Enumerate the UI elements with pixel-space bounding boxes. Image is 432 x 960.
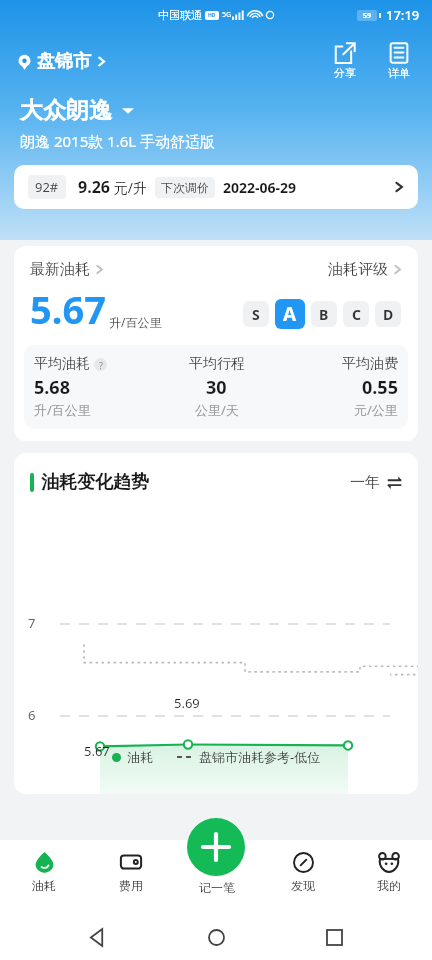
staticText: D	[383, 305, 394, 324]
button[interactable]: 最新油耗	[30, 260, 104, 279]
staticText: 5.67	[84, 742, 110, 760]
staticText: 盘锦市	[37, 50, 91, 73]
staticText: 油耗	[127, 749, 153, 765]
staticText: 平均油耗	[34, 355, 90, 373]
staticText: 升/百公里	[34, 401, 91, 419]
staticText: 下次调价	[161, 180, 209, 195]
staticText: 6	[28, 706, 36, 724]
staticText: 9.26	[78, 176, 110, 198]
staticText: A	[283, 301, 297, 327]
staticText: 油耗变化趋势	[41, 471, 149, 494]
button[interactable]: 分享	[330, 40, 360, 82]
button[interactable]: D	[375, 301, 401, 327]
button[interactable]: 油耗	[0, 850, 87, 893]
staticText: 17:19	[386, 6, 420, 24]
staticText: 7	[28, 614, 36, 632]
staticText: 元/升	[110, 178, 147, 197]
button[interactable]: Home	[196, 917, 236, 957]
staticText: 费用	[119, 878, 143, 893]
staticText: 大众朗逸	[20, 96, 112, 125]
staticText: 5.67	[30, 283, 106, 335]
button[interactable]: 油耗评级	[328, 260, 402, 279]
staticText: 中国联通	[158, 8, 202, 22]
button[interactable]: 发现	[260, 850, 346, 893]
button[interactable]: 大众朗逸	[20, 96, 134, 125]
staticText: 发现	[291, 878, 315, 893]
staticText: 详单	[388, 66, 410, 80]
button[interactable]: C	[343, 301, 369, 327]
button[interactable]: S	[243, 301, 269, 327]
button[interactable]: Back	[78, 917, 118, 957]
staticText: 升/百公里	[109, 314, 162, 330]
button[interactable]: 一年	[350, 473, 402, 492]
staticText: 我的	[377, 878, 401, 893]
staticText: 30	[206, 375, 227, 400]
staticText: 2022-06-29	[223, 178, 297, 197]
staticText: 公里/天	[195, 401, 239, 419]
staticText: 最新油耗	[30, 260, 90, 279]
staticText: 平均行程	[189, 355, 245, 373]
staticText: 记一笔	[199, 880, 235, 895]
staticText: B	[319, 305, 329, 324]
staticText: 5G	[222, 10, 232, 20]
staticText: 59	[363, 11, 372, 21]
button[interactable]: 我的	[346, 850, 432, 893]
staticText: 5.68	[34, 375, 70, 400]
button[interactable]: Recents	[314, 917, 354, 957]
button[interactable]: 记一笔	[187, 818, 245, 876]
staticText: ?	[99, 359, 103, 371]
button[interactable]: B	[311, 301, 337, 327]
staticText: 92#	[35, 178, 59, 196]
staticText: 盘锦市油耗参考-低位	[199, 748, 321, 766]
staticText: HD	[208, 12, 216, 19]
staticText: 5.69	[174, 694, 200, 712]
button[interactable]: ?	[94, 358, 107, 371]
staticText: 油耗评级	[328, 260, 388, 279]
button[interactable]: 盘锦市	[18, 46, 106, 77]
staticText: 元/公里	[354, 401, 398, 419]
staticText: 朗逸 2015款 1.6L 手动舒适版	[20, 131, 216, 151]
staticText: 一年	[350, 473, 380, 492]
staticText: S	[252, 305, 260, 324]
button[interactable]: 92#	[14, 165, 418, 209]
button[interactable]: 详单	[384, 40, 414, 82]
staticText: 油耗	[32, 878, 56, 893]
staticText: 0.55	[362, 375, 398, 400]
staticText: 平均油费	[342, 355, 398, 373]
button[interactable]: A	[275, 299, 305, 329]
button[interactable]: 记一笔	[174, 850, 260, 895]
staticText: C	[352, 305, 361, 324]
button[interactable]: 费用	[87, 850, 174, 893]
staticText: 分享	[334, 66, 356, 80]
